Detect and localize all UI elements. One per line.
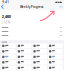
button[interactable]: [32, 66, 47, 70]
button[interactable]: [48, 60, 63, 65]
button[interactable]: [32, 55, 47, 59]
button[interactable]: [17, 55, 31, 59]
button[interactable]: [48, 55, 63, 59]
button[interactable]: [48, 44, 63, 48]
button[interactable]: [17, 44, 31, 48]
button[interactable]: [1, 49, 16, 54]
button[interactable]: [17, 66, 31, 70]
staticText: 2,480: [2, 14, 11, 19]
button[interactable]: [32, 60, 47, 65]
button[interactable]: [1, 55, 16, 59]
button[interactable]: [48, 49, 63, 54]
button[interactable]: [32, 49, 47, 54]
button[interactable]: More options: [58, 5, 64, 8]
button[interactable]: [1, 44, 16, 48]
button[interactable]: [17, 49, 31, 54]
button[interactable]: Back: [0, 4, 5, 10]
staticText: +12%: [2, 21, 10, 24]
button[interactable]: [48, 66, 63, 70]
staticText: Weekly Progress: [20, 5, 43, 9]
button[interactable]: [32, 44, 47, 48]
button[interactable]: [1, 66, 16, 70]
button[interactable]: [1, 60, 16, 65]
button[interactable]: [17, 60, 31, 65]
staticText: 9:41: [2, 0, 9, 4]
